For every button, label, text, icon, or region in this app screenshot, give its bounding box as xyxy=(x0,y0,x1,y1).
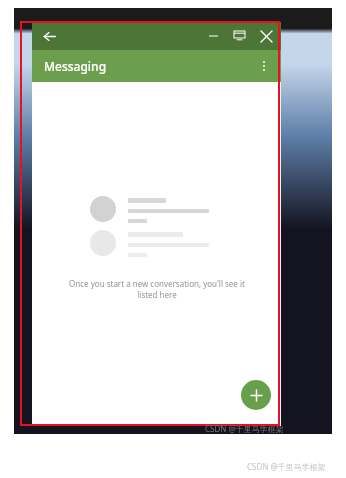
button[interactable]: Minimize xyxy=(200,22,226,50)
staticText: CSDN @千里马学框架 xyxy=(247,461,326,472)
staticText: Once you start a new conversation, you'l… xyxy=(63,278,251,300)
button[interactable]: Close xyxy=(252,22,280,50)
staticText: CSDN @千里马学框架 xyxy=(205,423,284,434)
staticText: Messaging xyxy=(44,58,107,74)
button[interactable]: Maximize xyxy=(226,22,252,50)
button[interactable]: More options xyxy=(251,53,277,79)
button[interactable]: New conversation xyxy=(241,380,271,410)
button[interactable]: Back xyxy=(35,22,63,50)
